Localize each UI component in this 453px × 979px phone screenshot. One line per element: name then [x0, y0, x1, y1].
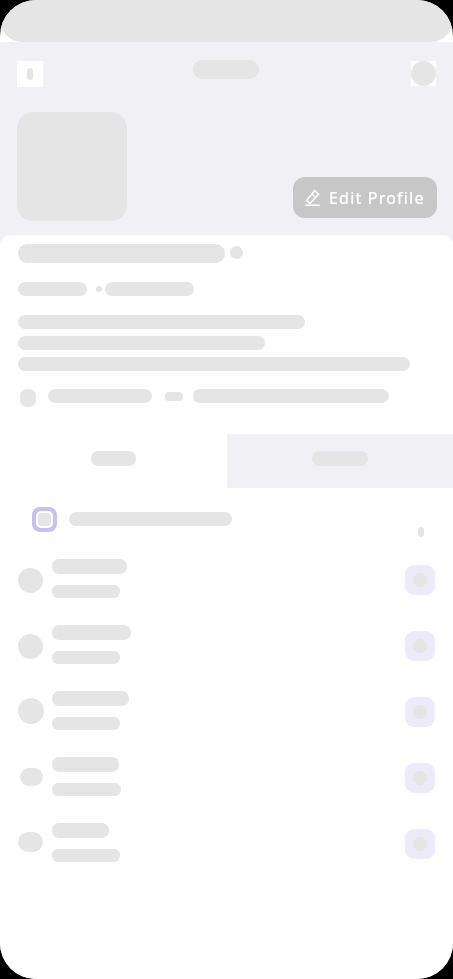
button[interactable]: More options [411, 61, 436, 86]
button[interactable] [0, 811, 453, 877]
button[interactable] [0, 745, 453, 811]
button[interactable]: Edit Profile [293, 177, 437, 218]
button[interactable]: Back [17, 61, 43, 87]
button[interactable] [0, 434, 227, 488]
button[interactable] [0, 679, 453, 745]
button[interactable] [0, 613, 453, 679]
button[interactable] [227, 434, 453, 488]
staticText: Edit Profile [329, 187, 425, 209]
button[interactable] [0, 547, 453, 613]
